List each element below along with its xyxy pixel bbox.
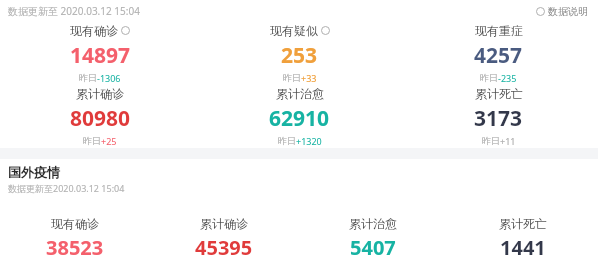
staticText: +25 xyxy=(101,135,117,147)
staticText: +1320 xyxy=(296,135,322,147)
button[interactable]: 现有确诊 xyxy=(0,216,149,261)
staticText: 现有确诊 xyxy=(70,23,118,38)
staticText: 累计确诊 xyxy=(200,216,248,231)
staticText: 国外疫情 xyxy=(8,164,60,180)
button[interactable]: 累计死亡 xyxy=(448,216,598,261)
staticText: 现有确诊 xyxy=(51,216,99,231)
staticText: 5407 xyxy=(350,234,396,261)
staticText: 现有疑似 xyxy=(270,23,318,38)
staticText: 昨日 xyxy=(480,72,498,83)
staticText: 昨日 xyxy=(482,135,500,146)
staticText: -235 xyxy=(498,72,517,84)
staticText: 253 xyxy=(281,41,318,70)
staticText: 累计确诊 xyxy=(76,86,124,101)
staticText: 80980 xyxy=(70,104,131,133)
staticText: 昨日 xyxy=(79,72,97,83)
staticText: 数据更新至 2020.03.12 15:04 xyxy=(8,4,140,18)
staticText: 累计死亡 xyxy=(499,216,547,231)
button[interactable]: 现有确诊 xyxy=(0,23,200,84)
staticText: 累计治愈 xyxy=(349,216,397,231)
staticText: -1306 xyxy=(97,72,121,84)
staticText: 昨日 xyxy=(278,135,296,146)
button[interactable]: 现有重症 xyxy=(399,23,598,84)
staticText: 累计治愈 xyxy=(276,86,324,101)
button[interactable]: 累计确诊 xyxy=(149,216,298,261)
staticText: 45395 xyxy=(195,234,253,261)
button[interactable]: 累计死亡 xyxy=(399,86,598,147)
button[interactable]: 现有疑似 xyxy=(200,23,399,84)
staticText: 14897 xyxy=(70,41,131,70)
staticText: 昨日 xyxy=(83,135,101,146)
staticText: 4257 xyxy=(474,41,523,70)
button[interactable]: 累计治愈 xyxy=(298,216,448,261)
staticText: +11 xyxy=(500,135,516,147)
staticText: 数据更新至2020.03.12 15:04 xyxy=(8,182,125,194)
button[interactable]: 数据说明 xyxy=(536,5,588,18)
staticText: 累计死亡 xyxy=(475,86,523,101)
staticText: +33 xyxy=(301,72,317,84)
button[interactable]: 累计治愈 xyxy=(200,86,399,147)
button[interactable]: 累计确诊 xyxy=(0,86,200,147)
staticText: 昨日 xyxy=(283,72,301,83)
staticText: 现有重症 xyxy=(475,23,523,38)
staticText: 3173 xyxy=(474,104,523,133)
staticText: 38523 xyxy=(46,234,104,261)
staticText: 数据说明 xyxy=(548,5,588,18)
staticText: 1441 xyxy=(500,234,546,261)
staticText: 62910 xyxy=(269,104,330,133)
